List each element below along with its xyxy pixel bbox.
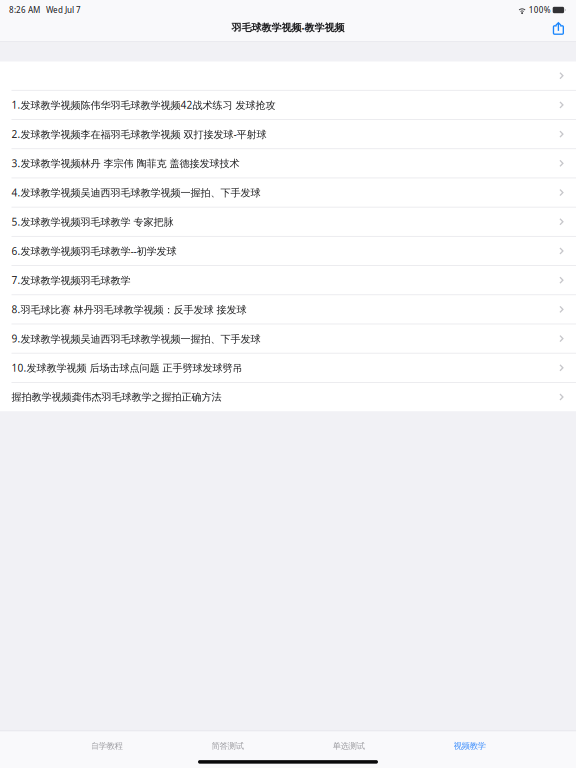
staticText: 5.发球教学视频羽毛球教学 专家把脉: [11, 215, 173, 229]
staticText: 握拍教学视频龚伟杰羽毛球教学之握拍正确方法: [11, 391, 221, 403]
staticText: 自学教程: [90, 741, 122, 751]
button[interactable]: 2.发球教学视频李在福羽毛球教学视频 双打接发球-平射球: [0, 120, 576, 148]
staticText: 7.发球教学视频羽毛球教学: [11, 273, 130, 287]
button[interactable]: 4.发球教学视频吴迪西羽毛球教学视频一握拍、下手发球: [0, 178, 576, 207]
button[interactable]: 8.羽毛球比赛 林丹羽毛球教学视频：反手发球 接发球: [0, 295, 576, 324]
button[interactable]: 握拍教学视频龚伟杰羽毛球教学之握拍正确方法: [0, 383, 576, 411]
staticText: 简答测试: [211, 741, 243, 751]
staticText: 3.发球教学视频林丹 李宗伟 陶菲克 盖德接发球技术: [11, 156, 239, 170]
staticText: 羽毛球教学视频-教学视频: [231, 20, 344, 34]
staticText: 100%: [529, 5, 551, 15]
staticText: 单选测试: [332, 741, 364, 751]
staticText: 4.发球教学视频吴迪西羽毛球教学视频一握拍、下手发球: [11, 186, 260, 199]
button[interactable]: 10.发球教学视频 后场击球点问题 正手劈球发球劈吊: [0, 354, 576, 382]
button[interactable]: 7.发球教学视频羽毛球教学: [0, 266, 576, 294]
staticText: 视频教学: [453, 741, 485, 751]
button[interactable]: 单选测试: [288, 738, 409, 754]
staticText: 6.发球教学视频羽毛球教学--初学发球: [11, 244, 176, 258]
button[interactable]: 1.发球教学视频陈伟华羽毛球教学视频42战术练习 发球抢攻: [0, 91, 576, 119]
button[interactable]: 简答测试: [167, 738, 288, 754]
button[interactable]: 9.发球教学视频吴迪西羽毛球教学视频一握拍、下手发球: [0, 324, 576, 353]
button[interactable]: 6.发球教学视频羽毛球教学--初学发球: [0, 237, 576, 265]
staticText: 9.发球教学视频吴迪西羽毛球教学视频一握拍、下手发球: [11, 332, 260, 345]
staticText: 10.发球教学视频 后场击球点问题 正手劈球发球劈吊: [11, 361, 242, 375]
staticText: 8:26 AM Wed Jul 7: [9, 5, 81, 15]
staticText: 2.发球教学视频李在福羽毛球教学视频 双打接发球-平射球: [11, 127, 266, 141]
button[interactable]: 5.发球教学视频羽毛球教学 专家把脉: [0, 208, 576, 236]
button[interactable]: 视频教学: [409, 738, 530, 754]
button[interactable]: Share: [542, 21, 576, 40]
staticText: 8.羽毛球比赛 林丹羽毛球教学视频：反手发球 接发球: [11, 302, 246, 316]
button[interactable]: 3.发球教学视频林丹 李宗伟 陶菲克 盖德接发球技术: [0, 149, 576, 177]
button[interactable]: 自学教程: [46, 738, 167, 754]
staticText: 1.发球教学视频陈伟华羽毛球教学视频42战术练习 发球抢攻: [11, 98, 275, 112]
